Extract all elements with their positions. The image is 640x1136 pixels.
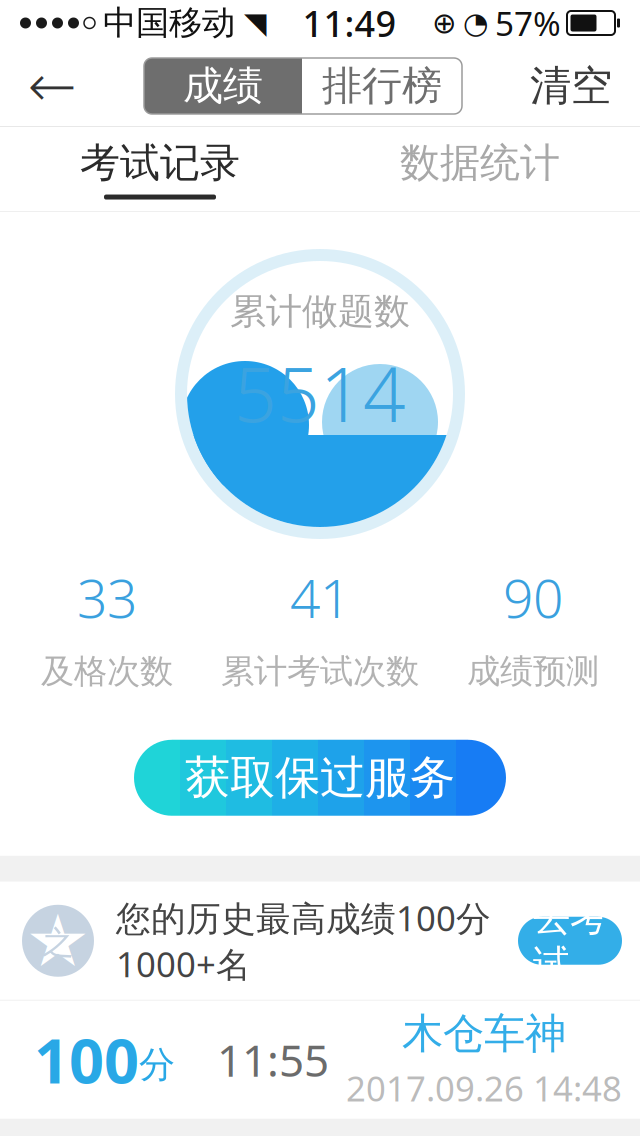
staticText: 数据统计: [400, 138, 560, 187]
button[interactable]: 成绩: [144, 58, 302, 114]
staticText: 11:55: [217, 1031, 329, 1089]
staticText: ◔: [463, 6, 489, 40]
button[interactable]: Back: [14, 48, 90, 124]
staticText: 成绩: [183, 61, 263, 110]
button[interactable]: ★: [0, 882, 640, 1000]
staticText: ⊕: [432, 6, 457, 40]
staticText: 90: [503, 562, 563, 633]
staticText: 去考试: [533, 895, 607, 987]
staticText: 之: [42, 923, 74, 962]
staticText: 5514: [234, 343, 406, 443]
staticText: 清空: [530, 61, 612, 111]
button[interactable]: 获取保过服务: [134, 740, 506, 816]
staticText: 33: [77, 562, 137, 633]
button[interactable]: 去考试: [518, 917, 622, 965]
staticText: 100: [34, 1019, 139, 1100]
button[interactable]: 数据统计: [320, 127, 640, 211]
button[interactable]: 100: [0, 1001, 640, 1119]
staticText: 成绩预测: [467, 651, 599, 692]
staticText: 您的历史最高成绩100分 1000+名: [116, 895, 500, 987]
staticText: 获取保过服务: [185, 750, 455, 806]
staticText: ★: [25, 900, 90, 982]
staticText: 57%: [495, 1, 561, 45]
staticText: 累计考试次数: [221, 651, 419, 692]
staticText: 分: [139, 1043, 175, 1087]
staticText: 2017.09.26 14:48: [346, 1065, 622, 1111]
button[interactable]: 清空: [516, 48, 626, 124]
staticText: 木仓车神: [402, 1008, 566, 1059]
staticText: 及格次数: [41, 651, 173, 692]
button[interactable]: 排行榜: [302, 58, 462, 114]
staticText: 排行榜: [322, 61, 442, 110]
staticText: 中国移动: [103, 2, 235, 43]
staticText: ◥: [244, 6, 267, 40]
button[interactable]: 考试记录: [0, 127, 320, 211]
staticText: 41: [290, 562, 350, 633]
staticText: 累计做题数: [230, 289, 410, 333]
staticText: 11:49: [302, 0, 396, 47]
staticText: ←: [27, 53, 76, 119]
staticText: 考试记录: [80, 138, 240, 187]
